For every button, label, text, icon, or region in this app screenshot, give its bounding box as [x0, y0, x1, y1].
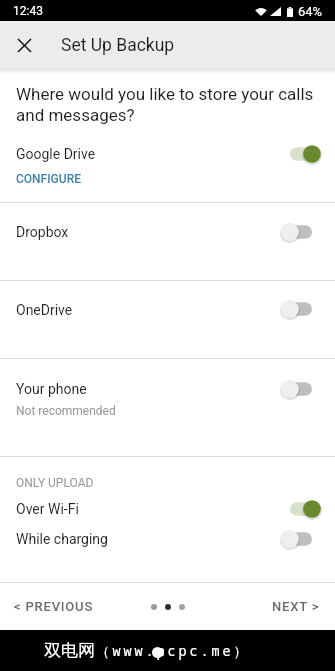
button[interactable]: Switch off	[288, 221, 322, 243]
staticText: NEXT >	[272, 599, 320, 614]
button[interactable]: < PREVIOUS	[0, 588, 110, 625]
staticText: OneDrive	[16, 302, 73, 318]
staticText: 64%	[298, 4, 323, 19]
staticText: Dropbox	[16, 224, 69, 240]
button[interactable]: Switch on	[288, 498, 322, 520]
button[interactable]: Switch on	[288, 143, 322, 165]
button[interactable]: Switch off	[288, 298, 322, 320]
button[interactable]: CONFIGURE	[16, 170, 87, 188]
staticText: Over Wi-Fi	[16, 501, 79, 517]
staticText: Set Up Backup	[61, 35, 175, 56]
staticText: Where would you like to store your calls…	[16, 84, 321, 125]
staticText: （www.pcpc.me）	[96, 642, 250, 660]
button[interactable]: Switch off	[288, 528, 322, 550]
staticText: Google Drive	[16, 146, 96, 162]
staticText: 12:43	[13, 4, 43, 18]
staticText: < PREVIOUS	[14, 599, 94, 614]
button[interactable]: Switch off	[288, 378, 322, 400]
staticText: While charging	[16, 531, 108, 547]
staticText: Not recommended	[16, 404, 116, 418]
button[interactable]: NEXT >	[256, 588, 335, 625]
staticText: ONLY UPLOAD	[16, 476, 94, 490]
staticText: Your phone	[16, 381, 87, 397]
staticText: 双电网	[44, 640, 95, 661]
button[interactable]: Close	[8, 29, 40, 61]
